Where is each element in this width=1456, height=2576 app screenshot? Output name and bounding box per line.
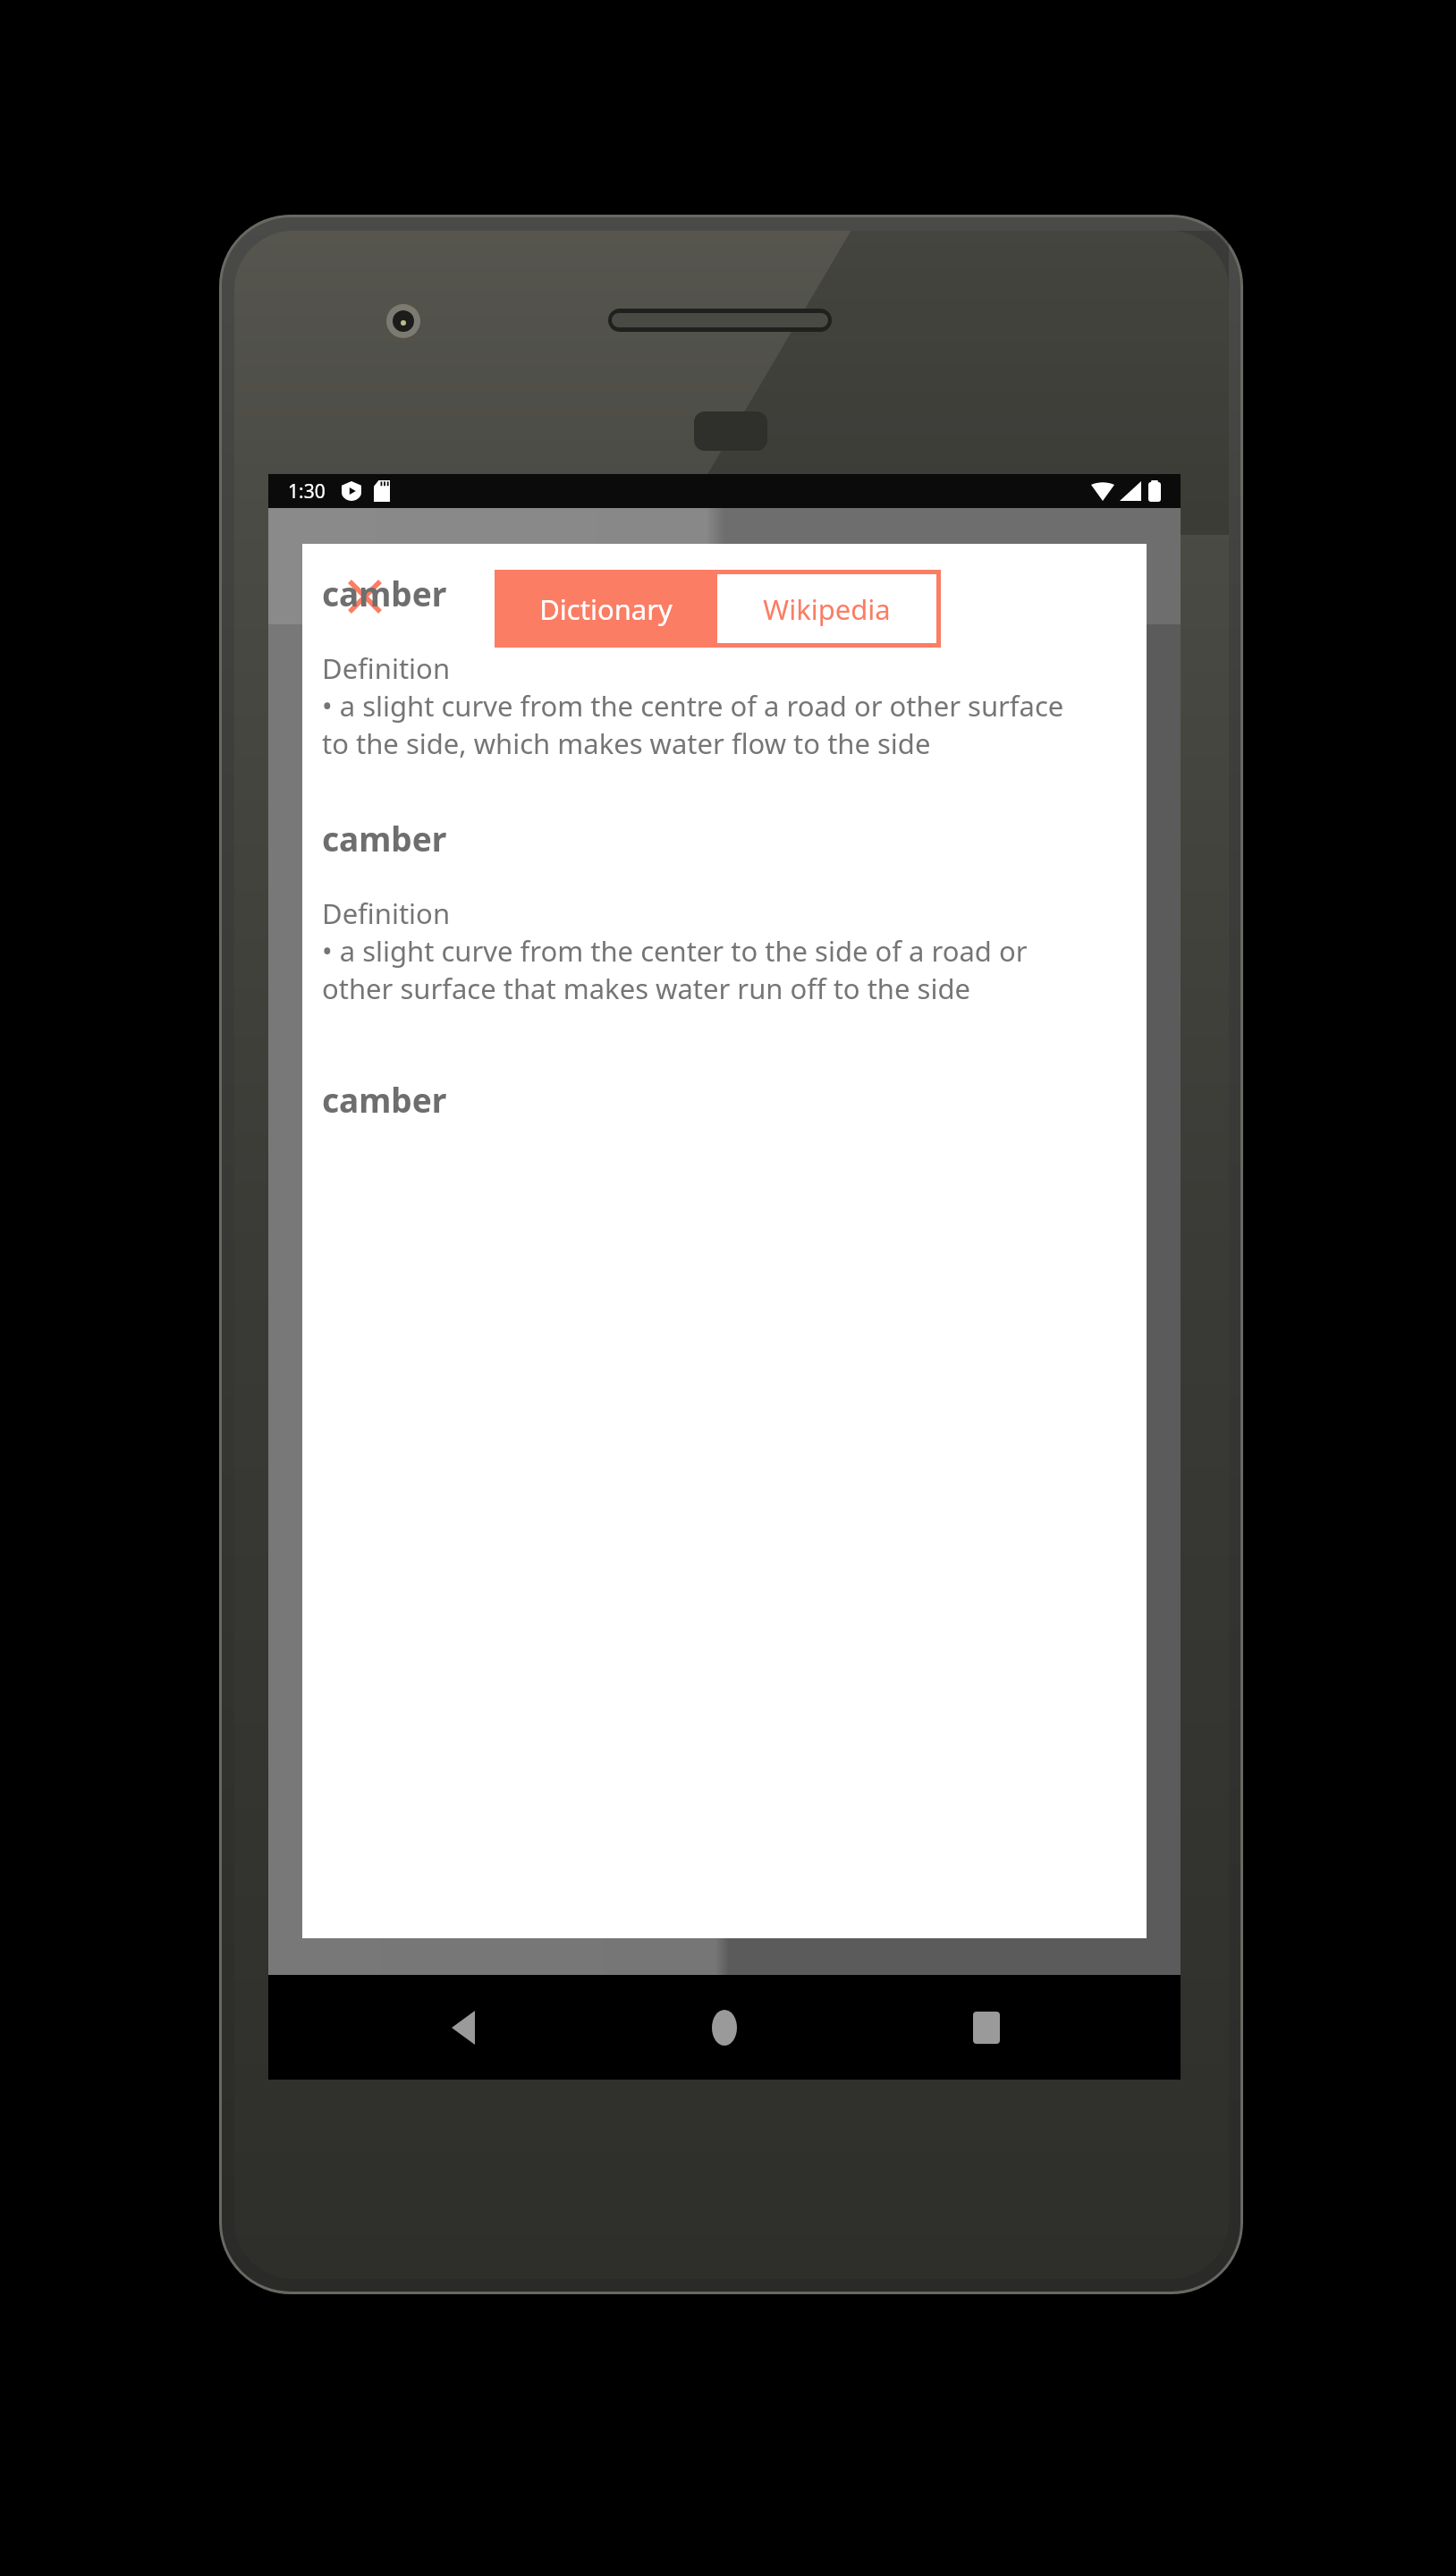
- staticText: Definition: [322, 894, 451, 932]
- staticText: Wikipedia: [763, 590, 891, 628]
- button[interactable]: Home: [657, 1975, 791, 2080]
- button[interactable]: Recent apps: [919, 1975, 1054, 2080]
- staticText: Dictionary: [539, 590, 673, 628]
- staticText: Definition: [322, 649, 451, 687]
- staticText: • a slight curve from the centre of a ro…: [322, 687, 1064, 724]
- staticText: camber: [322, 816, 447, 860]
- staticText: camber: [322, 571, 447, 615]
- button[interactable]: Back: [396, 1975, 530, 2080]
- staticText: camber: [322, 1077, 447, 1122]
- staticText: 1:30: [288, 479, 326, 504]
- staticText: to the side, which makes water flow to t…: [322, 724, 931, 762]
- staticText: • a slight curve from the center to the …: [322, 932, 1028, 970]
- button[interactable]: Dictionary: [495, 570, 717, 648]
- staticText: other surface that makes water run off t…: [322, 970, 970, 1007]
- button[interactable]: Wikipedia: [717, 574, 936, 643]
- button[interactable]: Close: [338, 570, 392, 623]
